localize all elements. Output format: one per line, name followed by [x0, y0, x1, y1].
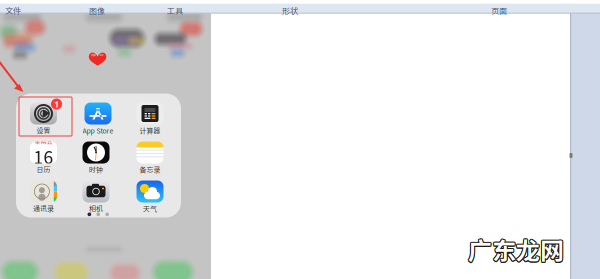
- staticText: 图像: [89, 5, 105, 16]
- staticText: 备忘录: [139, 164, 160, 174]
- button[interactable]: App Store: [82, 102, 113, 135]
- button[interactable]: 页面: [491, 5, 507, 16]
- staticText: 工具: [167, 5, 183, 16]
- staticText: 广东龙网: [468, 232, 564, 267]
- button[interactable]: 文件: [5, 5, 21, 16]
- button[interactable]: 图像: [89, 5, 105, 16]
- button[interactable]: 形状: [282, 5, 298, 16]
- button[interactable]: 相机: [82, 180, 109, 213]
- staticText: 设置: [36, 125, 50, 135]
- button[interactable]: 天气: [136, 180, 163, 213]
- staticText: 计算器: [139, 125, 160, 135]
- staticText: 天气: [143, 203, 157, 213]
- staticText: 文件: [5, 5, 21, 16]
- staticText: App Store: [82, 125, 113, 135]
- staticText: 广东龙网: [468, 231, 564, 266]
- staticText: 星期五: [34, 137, 52, 146]
- staticText: 广东龙网: [468, 233, 564, 268]
- staticText: 广东龙网: [467, 233, 563, 268]
- staticText: 广东龙网: [469, 233, 565, 268]
- button[interactable]: 工具: [167, 5, 183, 16]
- button[interactable]: 通讯录: [30, 180, 57, 213]
- staticText: 广东龙网: [467, 232, 563, 267]
- staticText: 时钟: [89, 164, 103, 174]
- button[interactable]: 设置: [19, 97, 72, 136]
- staticText: 广东龙网: [467, 231, 563, 266]
- staticText: 相机: [89, 203, 103, 213]
- staticText: 16: [33, 144, 53, 169]
- button[interactable]: 备忘录: [136, 141, 163, 174]
- staticText: 广东龙网: [469, 232, 565, 267]
- button[interactable]: 计算器: [136, 102, 163, 135]
- staticText: 日历: [36, 164, 50, 174]
- staticText: 形状: [282, 5, 298, 16]
- staticText: 页面: [491, 5, 507, 16]
- staticText: 广东龙网: [469, 231, 565, 266]
- staticText: 1: [54, 98, 59, 110]
- button[interactable]: 时钟: [82, 141, 109, 174]
- button[interactable]: 1: [30, 102, 57, 135]
- button[interactable]: 星期五: [30, 141, 57, 174]
- staticText: 通讯录: [33, 203, 54, 213]
